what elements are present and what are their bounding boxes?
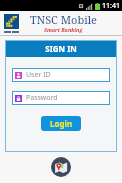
- button[interactable]: Branch locator: [51, 157, 71, 177]
- button[interactable]: Password: [12, 91, 110, 105]
- staticText: User ID: [26, 70, 51, 80]
- staticText: SIGN IN: [45, 43, 77, 54]
- button[interactable]: User ID: [12, 68, 110, 82]
- staticText: TNSC Mobile: [30, 12, 97, 27]
- button[interactable]: Login: [41, 116, 81, 131]
- staticText: Smart Banking: [44, 27, 83, 34]
- staticText: 11:41: [102, 1, 120, 11]
- staticText: Password: [26, 93, 58, 103]
- staticText: Login: [50, 118, 73, 129]
